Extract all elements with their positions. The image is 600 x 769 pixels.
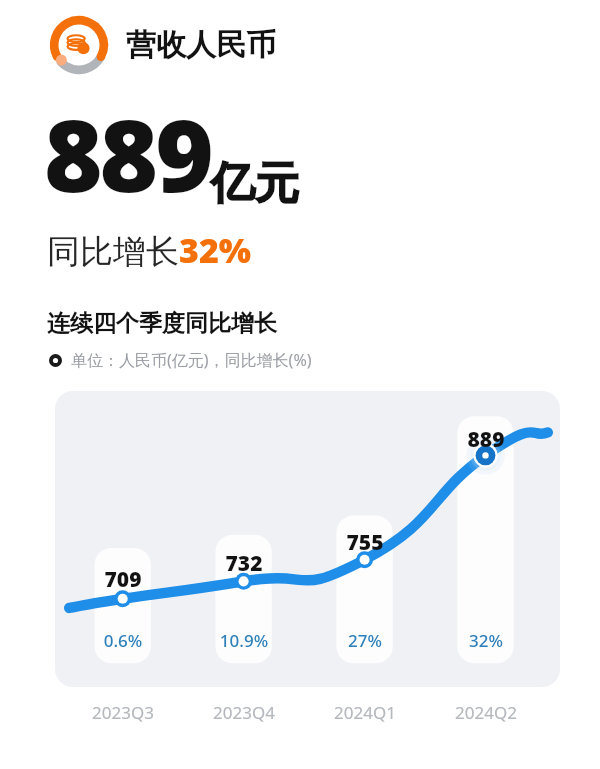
staticText: 10.9% bbox=[212, 629, 276, 652]
staticText: 0.6% bbox=[91, 629, 155, 652]
staticText: 32% bbox=[454, 629, 518, 652]
staticText: 889 bbox=[456, 425, 516, 454]
staticText: 2023Q3 bbox=[81, 701, 165, 724]
button[interactable]: 营收人民币 bbox=[47, 13, 276, 77]
staticText: 2024Q2 bbox=[444, 701, 528, 724]
staticText: 32% bbox=[179, 227, 252, 273]
staticText: 营收人民币 bbox=[126, 26, 276, 64]
staticText: 755 bbox=[335, 528, 395, 557]
staticText: 732 bbox=[214, 549, 274, 578]
other: 营收人民币 bbox=[47, 13, 111, 77]
staticText: 同比增长 bbox=[47, 231, 179, 273]
staticText: 27% bbox=[333, 629, 397, 652]
staticText: 连续四个季度同比增长 bbox=[47, 309, 277, 338]
staticText: 709 bbox=[93, 565, 153, 594]
staticText: 单位：人民币(亿元)，同比增长(%) bbox=[71, 349, 312, 371]
staticText: 2024Q1 bbox=[323, 701, 407, 724]
staticText: 889 bbox=[44, 85, 211, 221]
staticText: 2023Q4 bbox=[202, 701, 286, 724]
button[interactable]: 709 bbox=[55, 391, 560, 687]
staticText: 亿元 bbox=[211, 156, 299, 211]
button[interactable]: 同比增长 bbox=[47, 227, 252, 273]
